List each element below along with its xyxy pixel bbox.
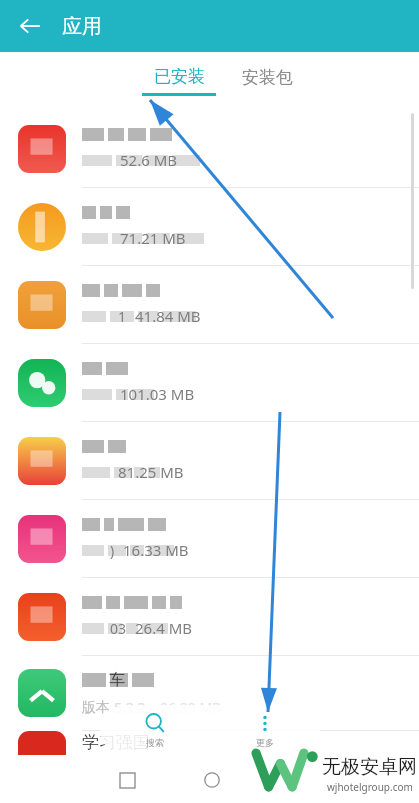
button[interactable]: 81.25 MB	[0, 422, 419, 499]
staticText: 41.84 MB	[135, 306, 201, 326]
button[interactable]: 搜索	[100, 705, 210, 755]
staticText: 已安装	[154, 66, 205, 87]
button[interactable]: 学习强国	[0, 731, 419, 755]
staticText: 车	[109, 670, 125, 690]
button[interactable]: Back	[10, 6, 50, 46]
staticText: 更多	[256, 737, 274, 748]
button[interactable]: 03	[0, 578, 419, 655]
staticText: 无极安卓网	[322, 755, 417, 779]
staticText: 学习强国	[82, 732, 150, 753]
staticText: 52.6 MB	[120, 150, 178, 170]
button[interactable]: 更多	[210, 705, 320, 755]
staticText: 16.33 MB	[123, 540, 189, 560]
staticText: wjhotelgroup.com	[327, 780, 413, 794]
button[interactable]: 安装包	[242, 67, 293, 88]
staticText: 03	[110, 619, 127, 638]
button[interactable]: 车	[0, 656, 419, 730]
staticText: 5.3.2	[114, 698, 146, 717]
staticText: 应用	[62, 14, 102, 39]
button[interactable]: )	[0, 500, 419, 577]
button[interactable]: 1	[0, 266, 419, 343]
staticText: 搜索	[146, 737, 164, 748]
staticText: 81.25 MB	[118, 462, 184, 482]
staticText: 版本	[82, 699, 110, 717]
staticText: 1	[118, 307, 127, 326]
staticText: 101.03 MB	[120, 384, 195, 404]
button[interactable]: 101.03 MB	[0, 344, 419, 421]
staticText: 26.4 MB	[135, 618, 193, 638]
staticText: 安装包	[242, 67, 293, 88]
button[interactable]: Recents	[110, 763, 144, 797]
staticText: )	[110, 541, 115, 560]
staticText: 71.21 MB	[120, 228, 186, 248]
button[interactable]: 已安装	[142, 66, 216, 96]
button[interactable]: 52.6 MB	[0, 110, 419, 187]
button[interactable]: Home	[195, 763, 229, 797]
button[interactable]: 71.21 MB	[0, 188, 419, 265]
staticText: 26.39 MB	[160, 698, 222, 717]
